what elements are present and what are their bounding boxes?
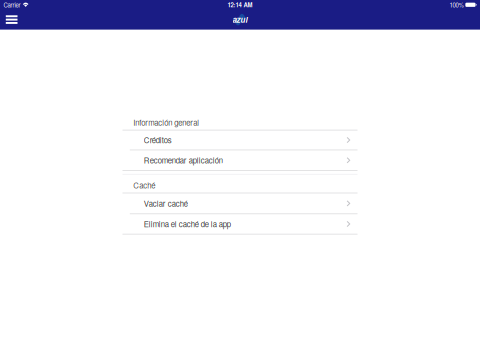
button[interactable]: Vaciar caché [122, 193, 357, 213]
staticText: 100% [450, 0, 464, 9]
staticText: Créditos [144, 134, 172, 146]
staticText: Caché [133, 180, 155, 191]
staticText: Información general [133, 117, 199, 128]
staticText: Elimina el caché de la app [144, 218, 231, 229]
staticText: Carrier [3, 0, 20, 9]
staticText: Vaciar caché [144, 198, 188, 209]
button[interactable]: Recomendar aplicación [122, 150, 357, 170]
staticText: Recomendar aplicación [144, 155, 223, 166]
staticText: 12:14 AM [227, 0, 252, 9]
button[interactable]: Elimina el caché de la app [122, 214, 357, 234]
button[interactable]: Menu [0, 10, 23, 29]
staticText: azul [232, 14, 247, 25]
button[interactable]: Créditos [122, 130, 357, 150]
